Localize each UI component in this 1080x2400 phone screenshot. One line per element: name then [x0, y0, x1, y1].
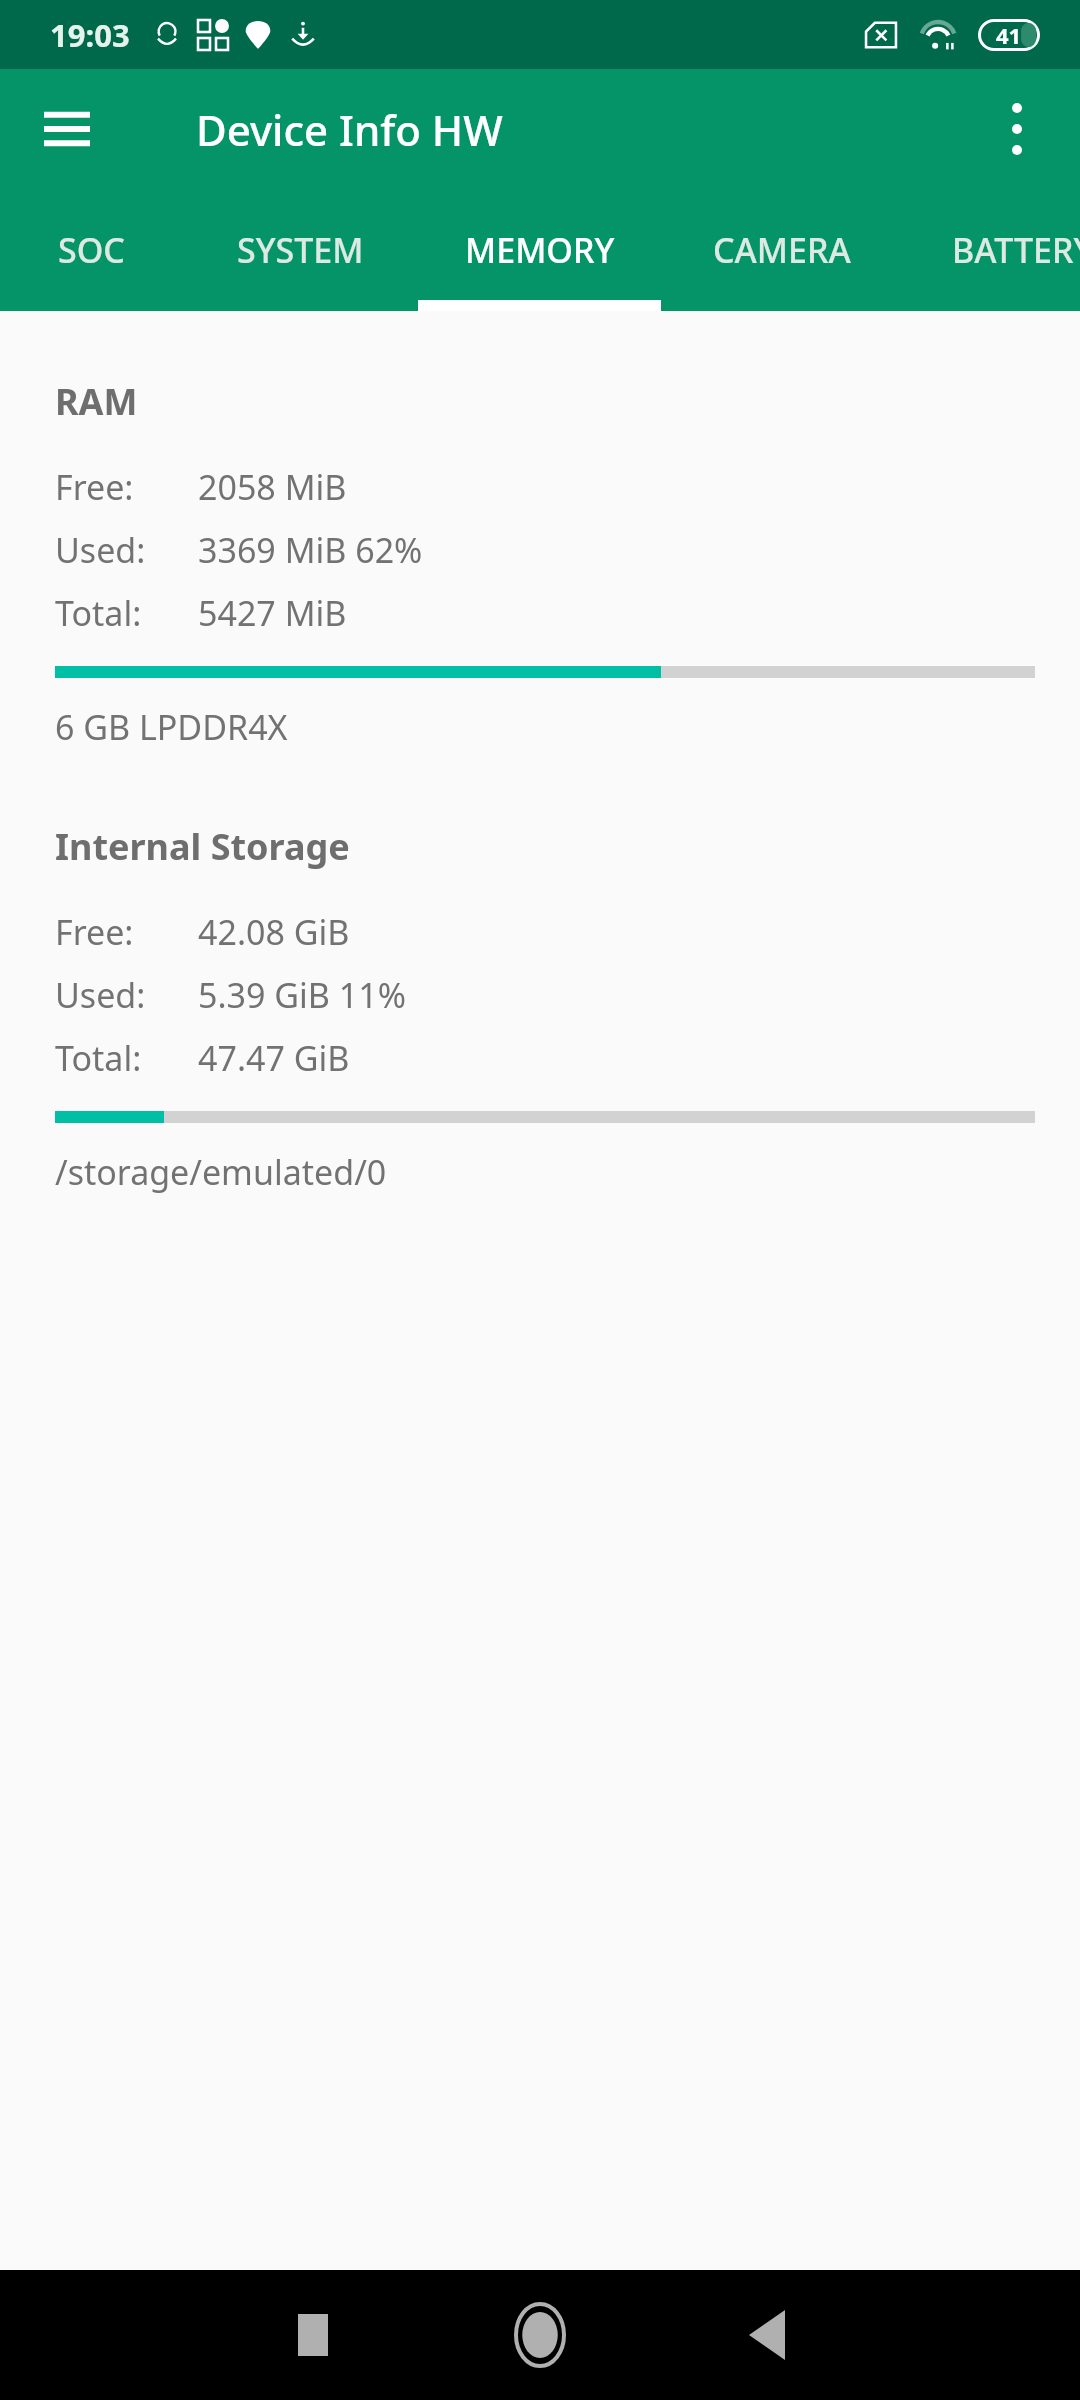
staticText: Used: [55, 972, 146, 1018]
button[interactable]: Open navigation menu [22, 84, 112, 174]
staticText: 3369 MiB 62% [198, 527, 423, 573]
staticText: 6 GB LPDDR4X [55, 704, 288, 750]
button[interactable]: CAMERA [661, 189, 903, 311]
staticText: CAMERA [713, 227, 851, 273]
staticText: Used: [55, 527, 146, 573]
button[interactable]: MEMORY [418, 189, 661, 311]
staticText: Free: [55, 464, 134, 510]
staticText: Device Info HW [196, 101, 503, 158]
staticText: 5.39 GiB 11% [198, 972, 406, 1018]
staticText: 19:03 [50, 14, 130, 56]
button[interactable]: Back [712, 2280, 822, 2390]
staticText: 41 [996, 20, 1022, 50]
staticText: Free: [55, 909, 134, 955]
button[interactable]: Home [485, 2280, 595, 2390]
staticText: BATTERY [952, 227, 1080, 273]
button[interactable]: More options [972, 84, 1062, 174]
button[interactable]: BATTERY [903, 189, 1080, 311]
staticText: /storage/emulated/0 [55, 1149, 387, 1195]
staticText: 5427 MiB [198, 590, 347, 636]
staticText: RAM [55, 377, 138, 426]
button[interactable]: SYSTEM [182, 189, 418, 311]
staticText: 47.47 GiB [198, 1035, 350, 1081]
staticText: Total: [55, 1035, 142, 1081]
staticText: MEMORY [465, 227, 615, 273]
button[interactable]: Recent apps [258, 2280, 368, 2390]
button[interactable]: SOC [0, 189, 182, 311]
staticText: SOC [58, 227, 125, 273]
staticText: Internal Storage [55, 822, 350, 871]
staticText: SYSTEM [237, 227, 364, 273]
staticText: 42.08 GiB [198, 909, 350, 955]
staticText: 2058 MiB [198, 464, 347, 510]
staticText: Total: [55, 590, 142, 636]
